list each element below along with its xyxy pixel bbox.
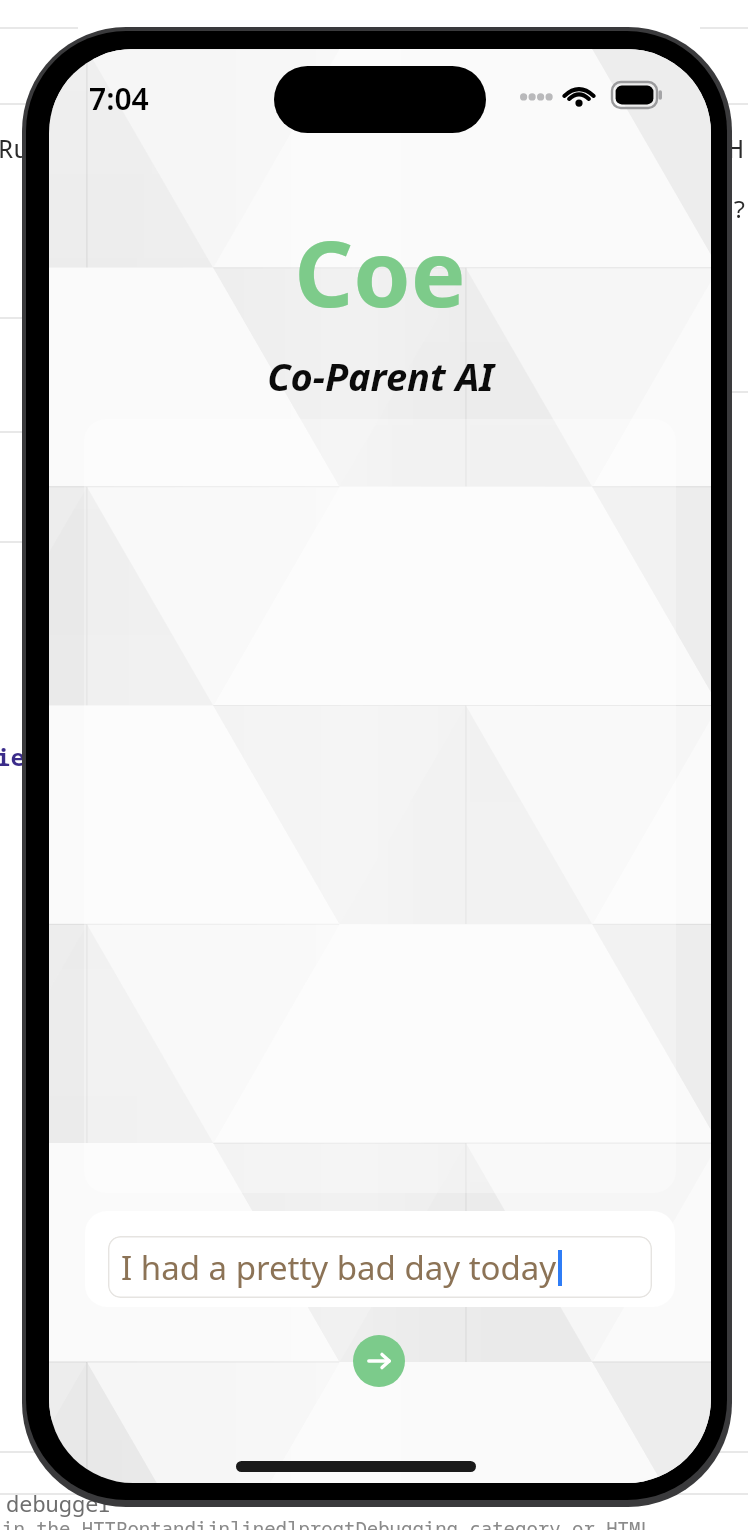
- staticText: in the HTTPontandijnlinedlprogtDebugging…: [2, 1516, 652, 1530]
- staticText: ie: [0, 740, 25, 773]
- staticText: I had a pretty bad day today: [121, 1245, 557, 1290]
- staticText: Co-Parent AI: [267, 350, 494, 402]
- staticText: 7:04: [89, 78, 149, 119]
- staticText: Coe: [294, 209, 466, 334]
- button[interactable]: I had a pretty bad day today: [108, 1236, 652, 1298]
- button[interactable]: [84, 419, 676, 1193]
- staticText: H: [728, 130, 744, 165]
- staticText: debugger: [6, 1488, 112, 1518]
- staticText: Ru: [0, 130, 30, 165]
- staticText: ?: [732, 192, 747, 225]
- button[interactable]: Send: [353, 1335, 405, 1387]
